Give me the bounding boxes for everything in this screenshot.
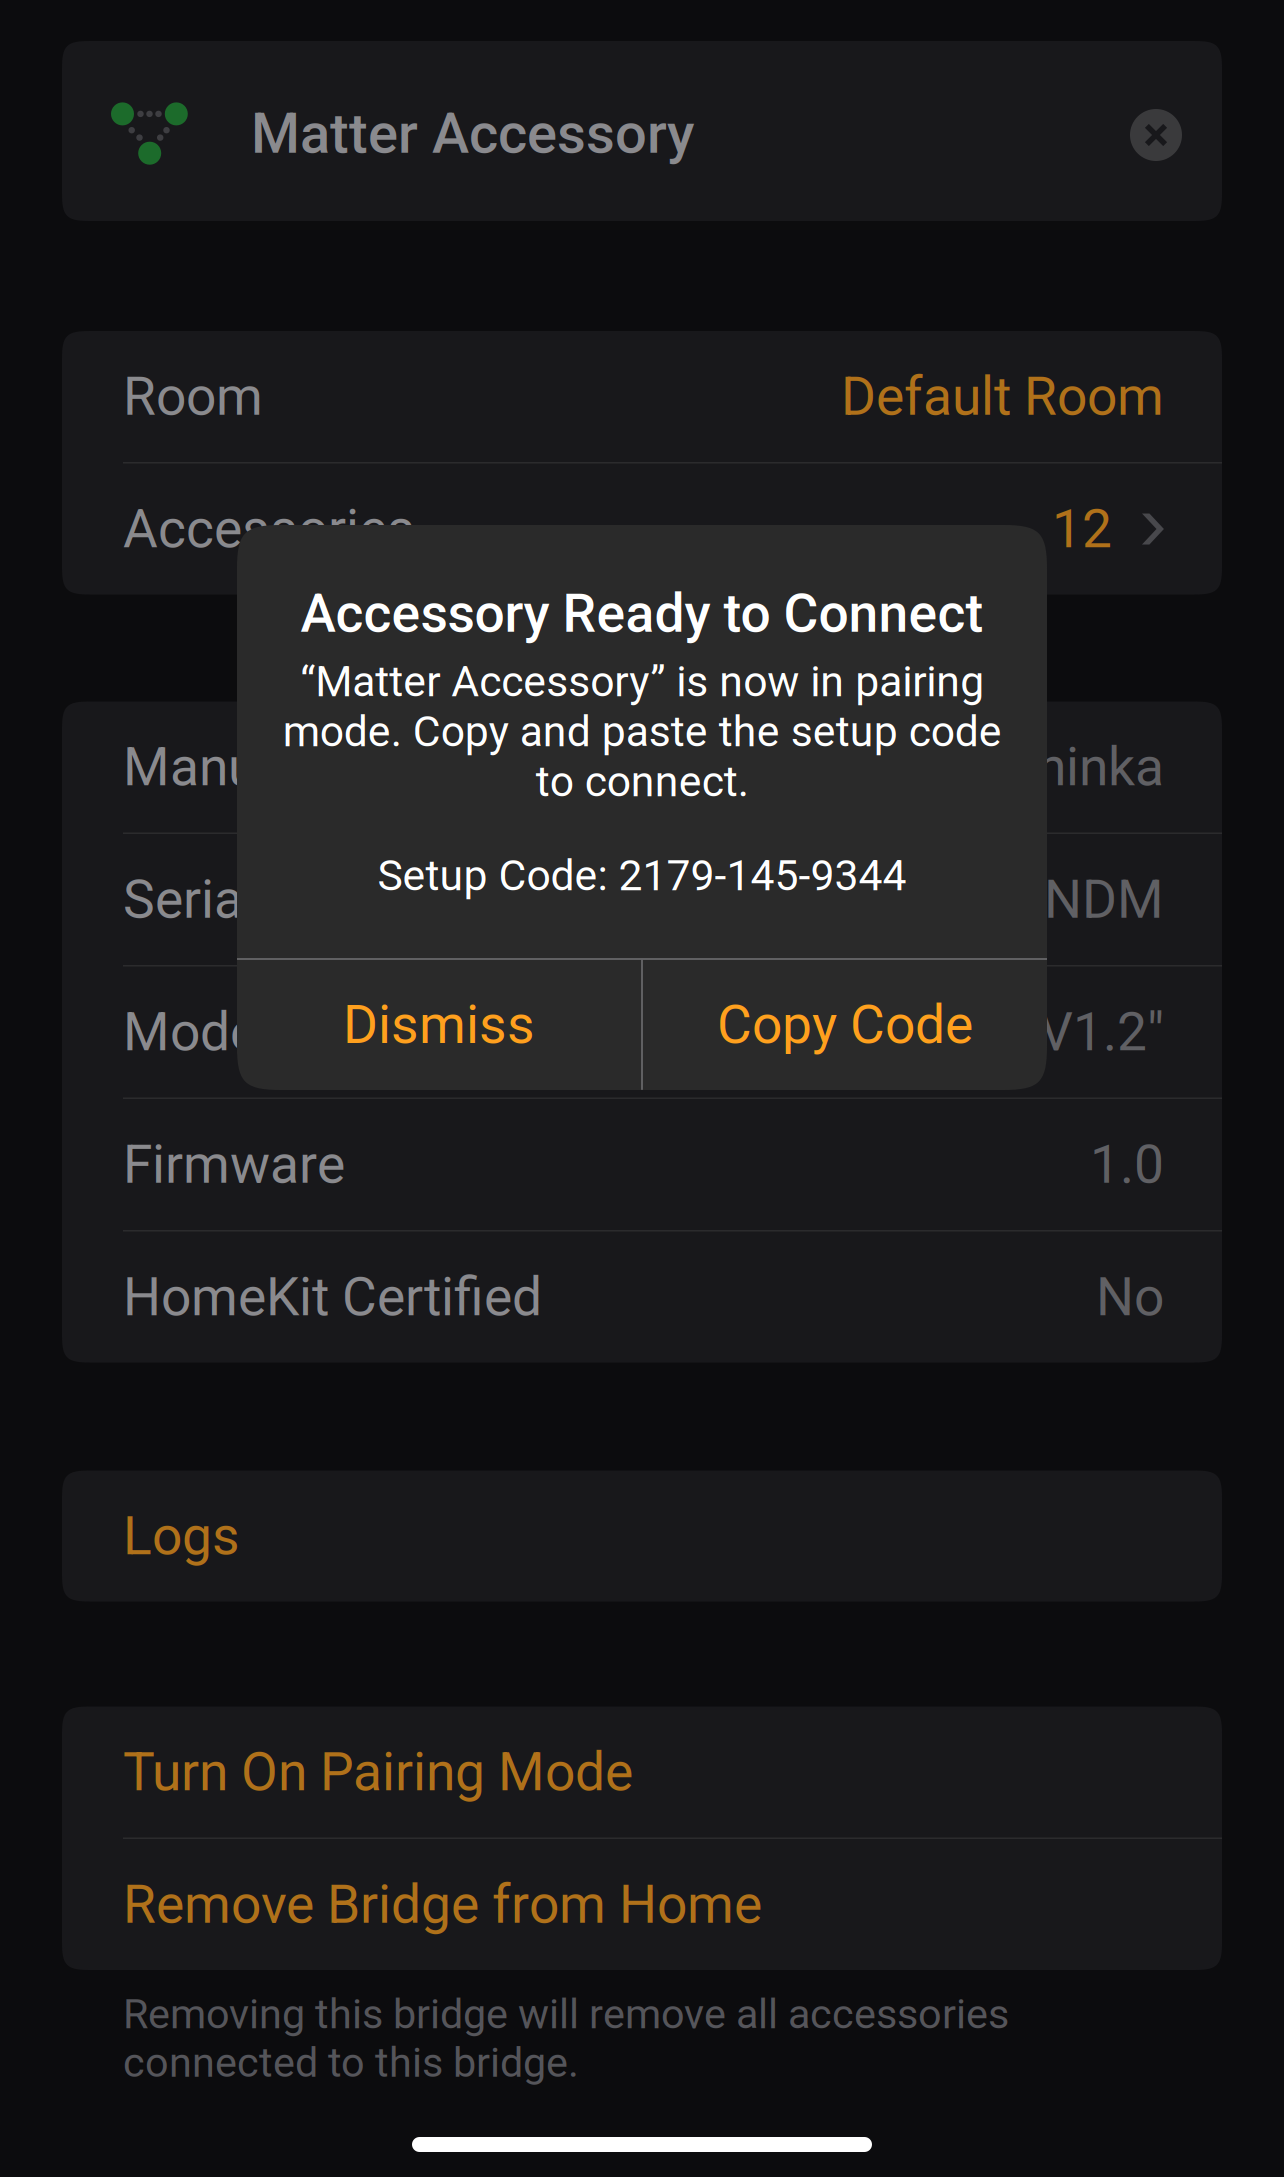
staticText: Copy Code [717,994,973,1056]
staticText: Mishinka [949,736,1164,798]
staticText: Default Room [841,365,1164,428]
button[interactable]: HomeKit Certified [62,1231,1222,1362]
staticText: Logs [123,1505,240,1567]
button[interactable]: Logs [62,1470,1222,1601]
staticText: 1.0 [1090,1133,1164,1196]
staticText: Matter Accessory [251,101,694,166]
button[interactable]: Accessories [62,463,1222,594]
staticText: No [1096,1266,1164,1328]
button[interactable]: Serial Number [62,834,1222,965]
button[interactable]: Close [1090,41,1222,221]
staticText: Firmware [123,1133,345,1196]
staticText: SN-RNDM [926,868,1164,931]
button[interactable]: Matter Accessory [62,41,1090,221]
staticText: Removing this bridge will remove all acc… [123,1990,1009,2087]
staticText: Room [123,365,263,428]
button[interactable]: Copy Code [643,960,1047,1090]
button[interactable]: Manufacturer [62,701,1222,832]
staticText: Serial Number [123,868,459,931]
button[interactable]: Turn On Pairing Mode [62,1706,1222,1837]
button[interactable]: Dismiss [237,960,641,1090]
staticText: Accessories [123,498,415,560]
button[interactable]: Room [62,331,1222,462]
staticText: "MTR-V1.2" [896,1001,1164,1063]
button[interactable]: Model [62,966,1222,1097]
button[interactable]: Firmware [62,1099,1222,1230]
staticText: Accessory Ready to Connect [300,582,983,645]
button[interactable]: Remove Bridge from Home [62,1839,1222,1970]
staticText: HomeKit Certified [123,1266,542,1328]
staticText: Setup Code: 2179-145-9344 [377,851,906,901]
staticText: Manufacturer [123,736,443,798]
staticText: Model [123,1001,271,1063]
staticText: “Matter Accessory” is now in pairing mod… [282,657,1001,807]
staticText: 12 [1052,498,1112,560]
staticText: Dismiss [343,994,535,1056]
staticText: Turn On Pairing Mode [123,1741,633,1803]
staticText: Remove Bridge from Home [123,1873,762,1936]
